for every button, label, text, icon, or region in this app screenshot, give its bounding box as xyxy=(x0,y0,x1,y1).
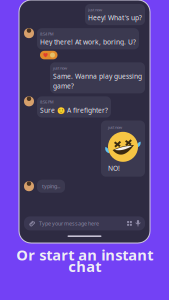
staticText: just now xyxy=(88,7,102,12)
staticText: 8:56 PM xyxy=(40,99,54,105)
button[interactable]: Type your message here xyxy=(19,216,150,230)
staticText: just now xyxy=(108,124,122,130)
staticText: Or start an instant chat xyxy=(16,245,153,276)
staticText: Hey there! At work, boring. U? xyxy=(40,37,136,46)
staticText: Type your message here xyxy=(39,220,99,227)
staticText: game? xyxy=(53,81,74,90)
staticText: just now xyxy=(53,65,67,71)
staticText: Sure 🙂 A firefighter? xyxy=(40,106,108,115)
staticText: Same. Wanna play guessing xyxy=(53,72,142,80)
staticText: Heey! What's up? xyxy=(88,13,142,22)
staticText: typing... xyxy=(42,183,60,190)
staticText: NO! xyxy=(108,164,120,173)
staticText: 8:54 PM xyxy=(40,31,54,36)
